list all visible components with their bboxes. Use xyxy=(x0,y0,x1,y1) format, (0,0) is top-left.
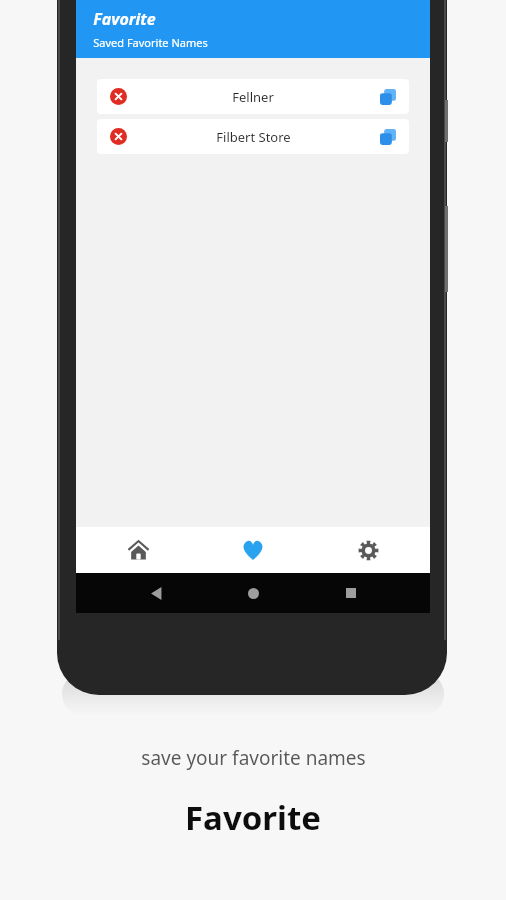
button[interactable]: Home xyxy=(85,527,191,573)
staticText: save your favorite names xyxy=(141,745,366,771)
button[interactable]: Delete Fellner xyxy=(105,83,132,110)
staticText: Fellner xyxy=(232,88,274,106)
staticText: Favorite xyxy=(185,795,321,840)
button[interactable]: Copy Fellner xyxy=(374,83,401,110)
button[interactable]: Copy Filbert Store xyxy=(374,123,401,150)
button[interactable]: Delete Filbert Store xyxy=(97,119,409,154)
staticText: Saved Favorite Names xyxy=(93,35,208,50)
staticText: Favorite xyxy=(93,8,156,30)
button[interactable]: Settings xyxy=(315,527,421,573)
button[interactable]: Home xyxy=(235,575,271,611)
staticText: Filbert Store xyxy=(216,128,291,146)
button[interactable]: Favorites xyxy=(200,527,306,573)
button[interactable]: Delete Fellner xyxy=(97,79,409,114)
button[interactable]: Back xyxy=(138,575,174,611)
button[interactable]: Delete Filbert Store xyxy=(105,123,132,150)
button[interactable]: Recent apps xyxy=(333,575,369,611)
